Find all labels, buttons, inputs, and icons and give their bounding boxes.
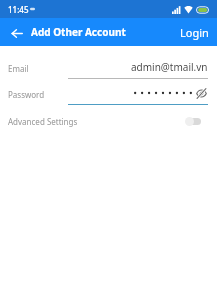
button[interactable]: Email (0, 57, 217, 79)
staticText: Email (8, 63, 29, 74)
button[interactable]: Advanced Settings (0, 110, 217, 132)
staticText: Add Other Account (31, 25, 126, 39)
button[interactable]: Login (172, 18, 217, 46)
button[interactable]: Show password (194, 86, 208, 100)
staticText: Advanced Settings (8, 116, 78, 127)
staticText: Password (8, 89, 45, 100)
staticText: Login (180, 25, 209, 40)
staticText: 11:45 (8, 4, 29, 15)
button[interactable]: Back (3, 19, 30, 46)
staticText: admin@tmail.vn (131, 60, 208, 74)
button[interactable]: Password (0, 83, 217, 105)
